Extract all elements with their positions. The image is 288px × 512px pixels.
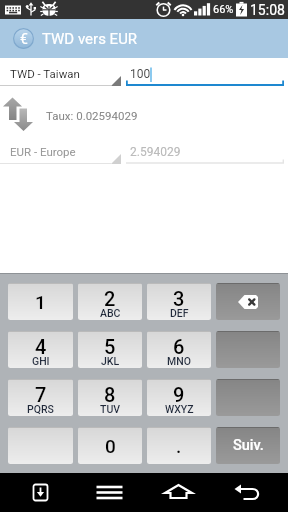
staticText: Taux: 0.02594029 xyxy=(46,109,138,122)
button[interactable]: € xyxy=(0,19,288,58)
button[interactable]: 0 xyxy=(78,427,142,464)
button[interactable]: Menu xyxy=(75,473,144,512)
staticText: 7 xyxy=(35,383,47,406)
button[interactable]: Accueil xyxy=(144,473,213,512)
button[interactable]: Masquer le clavier xyxy=(6,473,75,512)
button[interactable]: Retour xyxy=(213,473,282,512)
button[interactable]: TWD - Taiwan xyxy=(0,64,121,86)
button[interactable]: 4 xyxy=(8,331,73,368)
staticText: ABC xyxy=(100,307,121,319)
staticText: 5 xyxy=(104,335,116,358)
button[interactable]: 1 xyxy=(8,283,73,320)
staticText: WXYZ xyxy=(165,403,194,415)
staticText: Suiv. xyxy=(233,437,264,454)
button[interactable] xyxy=(216,331,280,368)
staticText: 1 xyxy=(35,291,46,313)
staticText: 2.594029 xyxy=(130,145,181,159)
button[interactable] xyxy=(216,379,280,416)
staticText: 8 xyxy=(104,383,116,406)
staticText: 3 xyxy=(173,287,185,310)
staticText: 6 xyxy=(173,335,185,358)
button[interactable]: 2 xyxy=(78,283,142,320)
staticText: JKL xyxy=(101,355,120,367)
staticText: 100 xyxy=(130,67,151,81)
button[interactable]: 6 xyxy=(147,331,211,368)
button[interactable]: 9 xyxy=(147,379,211,416)
staticText: 15:08 xyxy=(250,2,285,18)
button[interactable]: 8 xyxy=(78,379,142,416)
staticText: GHI xyxy=(32,355,50,367)
button[interactable]: Suiv. xyxy=(216,427,280,464)
staticText: 0 xyxy=(105,435,116,457)
button[interactable]: Retour arrière xyxy=(216,283,280,320)
staticText: TWD - Taiwan xyxy=(10,67,80,80)
button[interactable] xyxy=(8,427,73,464)
staticText: EUR - Europe xyxy=(10,145,76,158)
staticText: TUV xyxy=(100,403,121,415)
button[interactable]: 100 xyxy=(126,64,284,86)
button[interactable]: . xyxy=(147,427,211,464)
staticText: 66% xyxy=(213,3,234,16)
button[interactable]: 7 xyxy=(8,379,73,416)
staticText: 9 xyxy=(173,383,185,406)
button[interactable]: Inverser les devises xyxy=(1,97,33,133)
staticText: . xyxy=(176,435,182,457)
button[interactable]: 5 xyxy=(78,331,142,368)
staticText: 2 xyxy=(104,287,116,310)
button[interactable]: EUR - Europe xyxy=(0,142,121,164)
staticText: DEF xyxy=(170,307,189,319)
staticText: MNO xyxy=(167,355,191,367)
button[interactable]: 2.594029 xyxy=(126,142,284,164)
staticText: PQRS xyxy=(27,403,54,415)
staticText: € xyxy=(20,31,28,47)
staticText: 4 xyxy=(35,335,47,358)
staticText: TWD vers EUR xyxy=(42,30,138,48)
button[interactable]: 3 xyxy=(147,283,211,320)
